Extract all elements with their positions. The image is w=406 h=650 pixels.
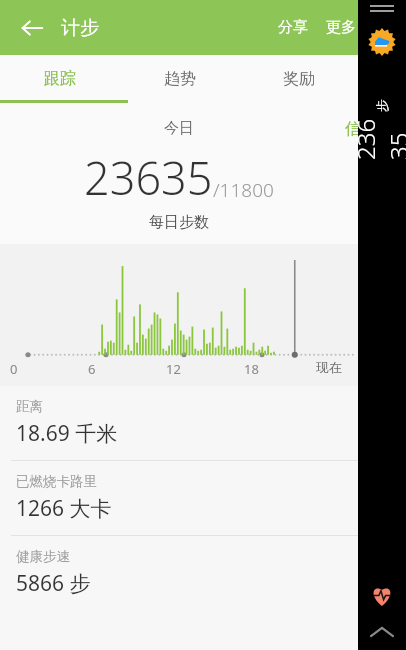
button[interactable]: 已燃烧卡路里 — [0, 461, 358, 535]
button[interactable]: 距离 — [0, 386, 358, 460]
staticText: 计步 — [61, 16, 99, 40]
button[interactable]: 跟踪 — [0, 55, 120, 103]
staticText: 0 — [10, 360, 18, 378]
staticText: 已燃烧卡路里 — [16, 473, 97, 490]
staticText: 健康步速 — [16, 548, 70, 565]
staticText: 今日 — [164, 119, 194, 138]
button[interactable]: Expand — [367, 622, 397, 642]
staticText: 分享 — [278, 18, 308, 37]
staticText: 奖励 — [283, 69, 315, 89]
staticText: 6 — [88, 360, 96, 378]
button[interactable]: 更多 — [316, 10, 358, 45]
staticText: 5866 步 — [16, 569, 91, 598]
staticText: 更多 — [326, 18, 356, 37]
staticText: 18 — [244, 360, 259, 378]
button[interactable]: 趋势 — [120, 55, 239, 103]
staticText: /11800 — [213, 177, 274, 203]
button[interactable]: Heart rate — [369, 582, 395, 608]
staticText: 1266 大卡 — [16, 494, 112, 523]
button[interactable]: 健康步速 — [0, 536, 358, 610]
button[interactable]: Back — [14, 10, 50, 46]
button[interactable]: 奖励 — [239, 55, 358, 103]
button[interactable]: 分享 — [270, 10, 316, 45]
staticText: 每日步数 — [149, 213, 209, 232]
staticText: 趋势 — [164, 69, 196, 89]
button[interactable]: Step counter — [368, 28, 396, 56]
staticText: 现在 — [316, 359, 342, 375]
staticText: 12 — [166, 360, 181, 378]
staticText: 23635 — [84, 147, 213, 208]
staticText: 信息 — [345, 119, 377, 139]
staticText: 18.69 千米 — [16, 419, 118, 448]
staticText: 距离 — [16, 398, 43, 415]
staticText: 23635 — [349, 112, 406, 160]
staticText: 跟踪 — [44, 69, 76, 89]
